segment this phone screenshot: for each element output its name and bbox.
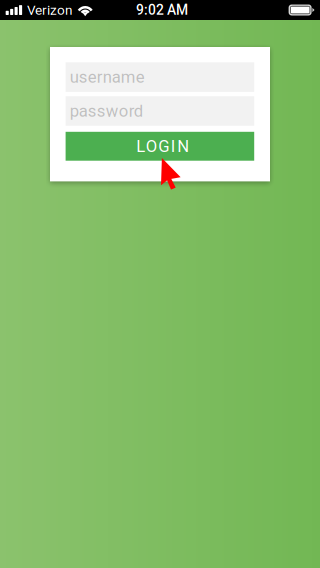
button[interactable]: LOGIN <box>66 132 254 161</box>
button[interactable]: username <box>66 62 254 92</box>
staticText: 9:02 AM <box>136 2 188 18</box>
staticText: Verizon <box>27 2 73 18</box>
staticText: LOGIN <box>136 136 189 156</box>
staticText: username <box>70 67 145 87</box>
staticText: password <box>70 101 143 121</box>
button[interactable]: password <box>66 96 254 126</box>
